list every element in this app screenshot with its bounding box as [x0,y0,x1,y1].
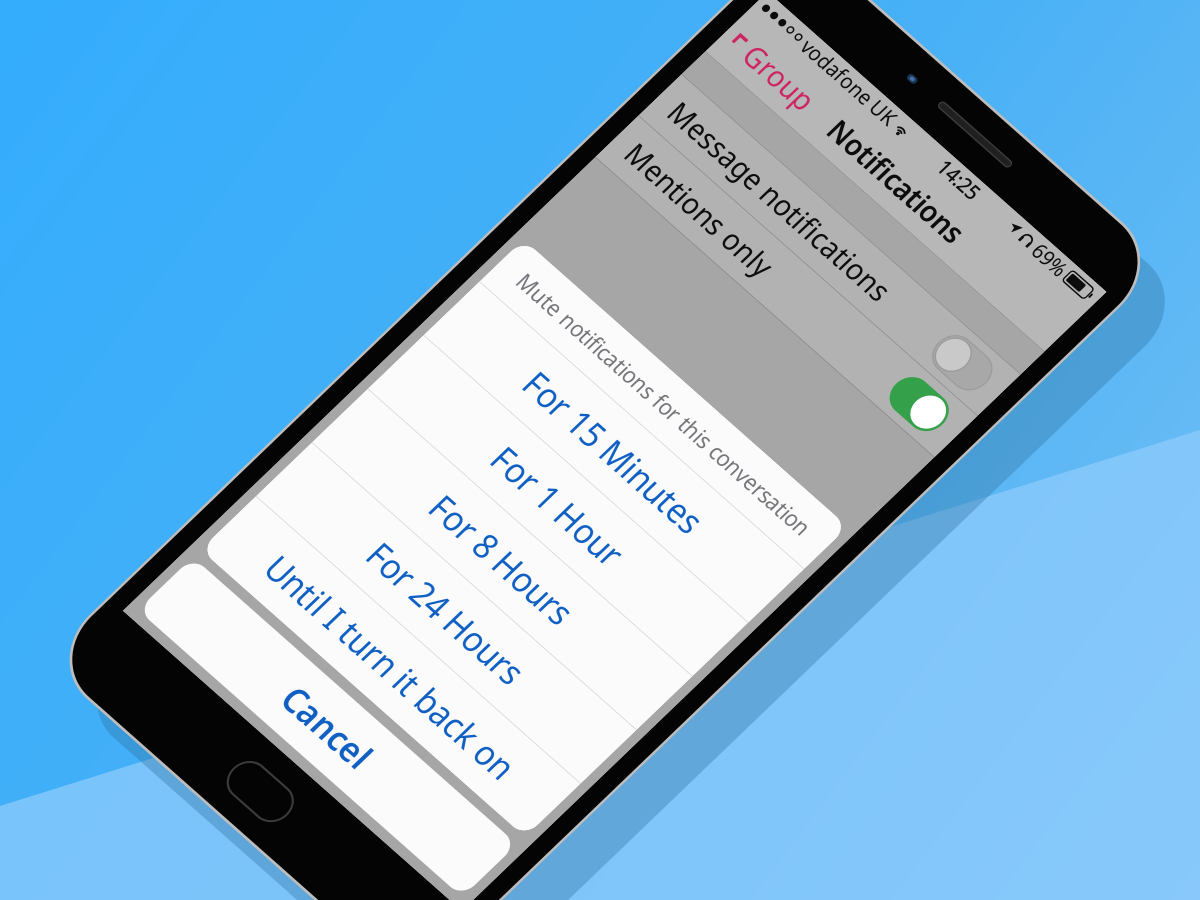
staticText: For 1 Hour [533,481,666,516]
staticText: Until I turn it back on [468,654,731,690]
button[interactable]: Cancel [420,708,779,765]
staticText: Notifications [530,133,670,163]
button[interactable]: For 15 Minutes [420,412,779,469]
button[interactable]: For 24 Hours [420,586,779,643]
staticText: Mentions only [427,247,580,277]
staticText: For 15 Minutes [507,423,693,458]
staticText: For 24 Hours [519,596,680,632]
button[interactable]: Until I turn it back on [420,643,779,700]
button[interactable]: Mentions only [412,240,787,284]
staticText: For 8 Hours [527,539,673,574]
button[interactable]: Message notifications [412,196,787,240]
staticText: Message notifications [427,203,662,233]
button[interactable]: For 1 Hour [420,470,779,527]
button[interactable]: For 8 Hours [420,528,779,585]
staticText: 69% [720,106,751,127]
staticText: 14:25 [615,106,655,127]
staticText: Cancel [556,719,643,755]
staticText: Mute notifications for this conversation [441,377,758,400]
